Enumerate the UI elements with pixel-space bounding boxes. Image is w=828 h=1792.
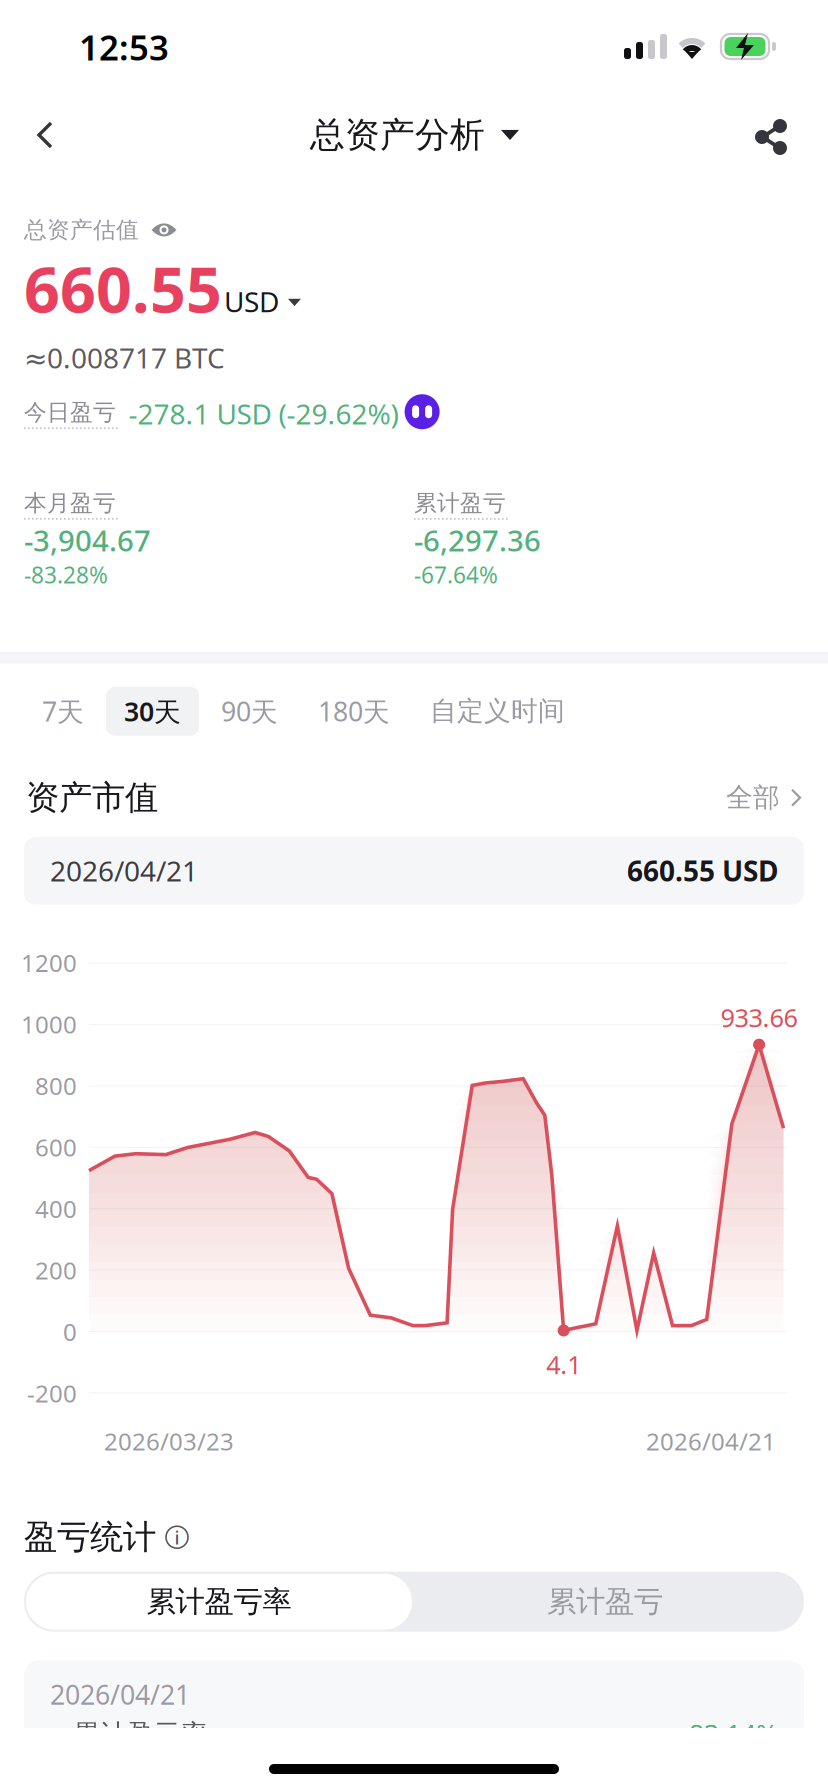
staticText: 累计盈亏率 <box>146 1584 291 1620</box>
staticText: 200 <box>35 1254 77 1286</box>
button[interactable]: 180天 <box>300 687 408 736</box>
staticText: 累计盈亏率 <box>73 1718 208 1751</box>
staticText: 今日盈亏 <box>24 398 116 426</box>
staticText: 总资产分析 <box>310 114 485 156</box>
button[interactable]: 累计盈亏率 <box>26 1574 412 1630</box>
staticText: 2026/04/21 <box>50 852 198 889</box>
staticText: 12:53 <box>79 24 169 70</box>
staticText: 660.55 <box>24 247 222 330</box>
staticText: 0 <box>63 1316 77 1348</box>
button[interactable]: 累计盈亏 <box>412 1574 798 1630</box>
button[interactable]: 总资产分析 <box>310 100 519 170</box>
staticText: -200 <box>27 1377 77 1409</box>
staticText: 30天 <box>124 693 181 729</box>
staticText: 83.14% <box>689 1717 778 1752</box>
staticText: 660.55 USD <box>627 852 778 889</box>
staticText: 累计盈亏 <box>547 1584 663 1620</box>
button[interactable]: 90天 <box>203 687 296 736</box>
staticText: -67.64% <box>414 560 498 590</box>
button[interactable]: 自定义时间 <box>412 687 583 736</box>
staticText: 全部 <box>726 781 780 814</box>
button[interactable]: Share <box>736 102 806 172</box>
staticText: -3,904.67 <box>24 521 151 560</box>
button[interactable]: 全部 <box>726 773 802 822</box>
staticText: 90天 <box>221 693 278 729</box>
staticText: 2026/04/21 <box>50 1677 190 1712</box>
staticText: 4.1 <box>546 1347 581 1381</box>
staticText: 累计盈亏 <box>414 489 506 517</box>
staticText: -6,297.36 <box>414 521 541 560</box>
button[interactable]: Back <box>10 100 80 170</box>
staticText: USD <box>224 283 279 320</box>
staticText: ≈0.008717 BTC <box>24 339 225 376</box>
staticText: 400 <box>35 1193 77 1225</box>
staticText: 自定义时间 <box>430 695 565 728</box>
button[interactable]: 7天 <box>24 687 102 736</box>
button[interactable]: 30天 <box>106 687 199 736</box>
staticText: 600 <box>35 1131 77 1163</box>
staticText: 资产市值 <box>26 777 158 818</box>
staticText: -278.1 USD (-29.62%) <box>129 395 399 432</box>
staticText: 本月盈亏 <box>24 489 116 517</box>
staticText: 1000 <box>21 1008 77 1040</box>
staticText: i <box>174 1525 179 1550</box>
staticText: -83.28% <box>24 560 108 590</box>
staticText: 800 <box>35 1070 77 1102</box>
staticText: 180天 <box>318 693 390 729</box>
staticText: 总资产估值 <box>24 216 139 244</box>
staticText: 1200 <box>21 947 77 979</box>
staticText: 2026/04/21 <box>646 1425 776 1457</box>
staticText: 7天 <box>42 693 84 729</box>
staticText: 盈亏统计 <box>24 1517 156 1558</box>
staticText: 2026/03/23 <box>104 1425 234 1457</box>
staticText: 933.66 <box>721 1001 798 1034</box>
